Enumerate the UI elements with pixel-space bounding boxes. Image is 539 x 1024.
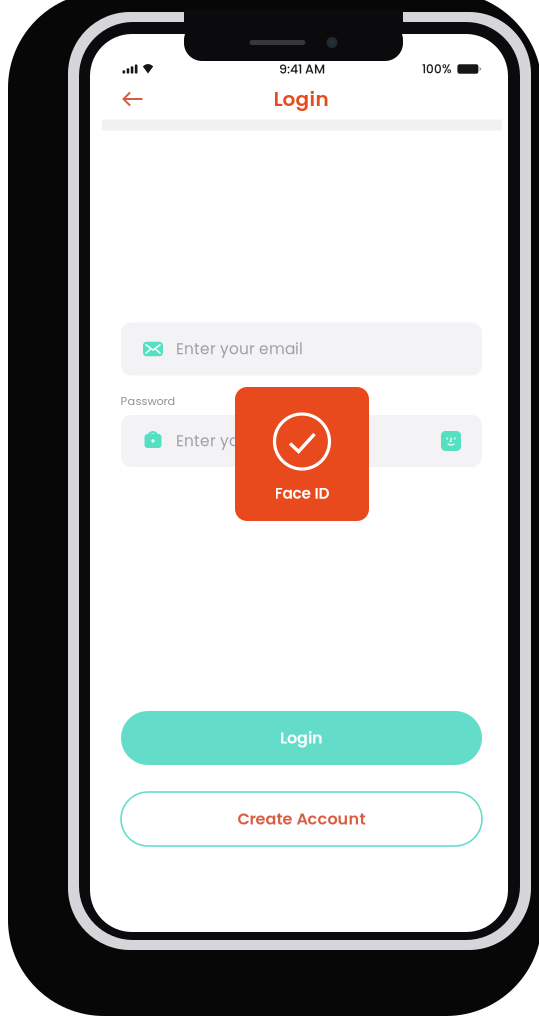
staticText: Enter your password bbox=[176, 430, 334, 452]
staticText: Enter your email bbox=[176, 338, 303, 360]
staticText: Login bbox=[280, 727, 323, 749]
staticText: 9:41 AM bbox=[279, 60, 325, 78]
staticText: Login bbox=[273, 85, 328, 113]
button[interactable]: Back bbox=[111, 80, 155, 118]
staticText: Create Account bbox=[237, 808, 365, 830]
button[interactable]: Login bbox=[121, 711, 482, 765]
staticText: Face ID bbox=[274, 482, 329, 504]
button[interactable]: Create Account bbox=[121, 792, 482, 846]
button[interactable]: Face ID bbox=[235, 387, 369, 521]
staticText: Password bbox=[120, 393, 175, 409]
staticText: 100% bbox=[422, 61, 452, 77]
